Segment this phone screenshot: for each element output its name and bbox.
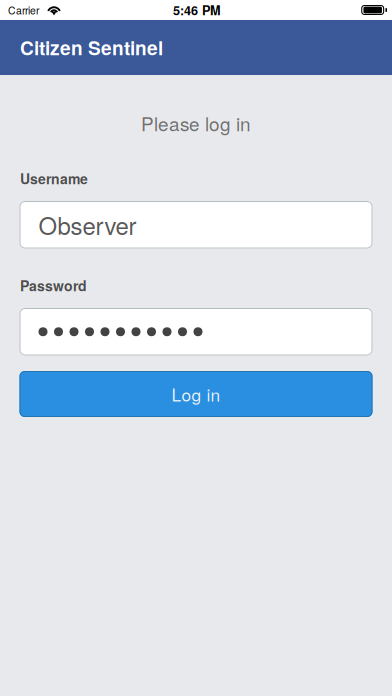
button[interactable]: Log in [19, 371, 372, 417]
staticText: 5:46 PM [173, 1, 221, 19]
button[interactable] [19, 308, 372, 355]
staticText: Citizen Sentinel [20, 34, 163, 61]
staticText: Log in [171, 382, 220, 406]
staticText: Password [20, 275, 87, 295]
button[interactable]: Observer [19, 201, 372, 248]
staticText: Observer [38, 208, 136, 242]
staticText: Carrier [8, 3, 39, 17]
staticText: Username [20, 168, 88, 188]
staticText: Please log in [141, 109, 251, 137]
